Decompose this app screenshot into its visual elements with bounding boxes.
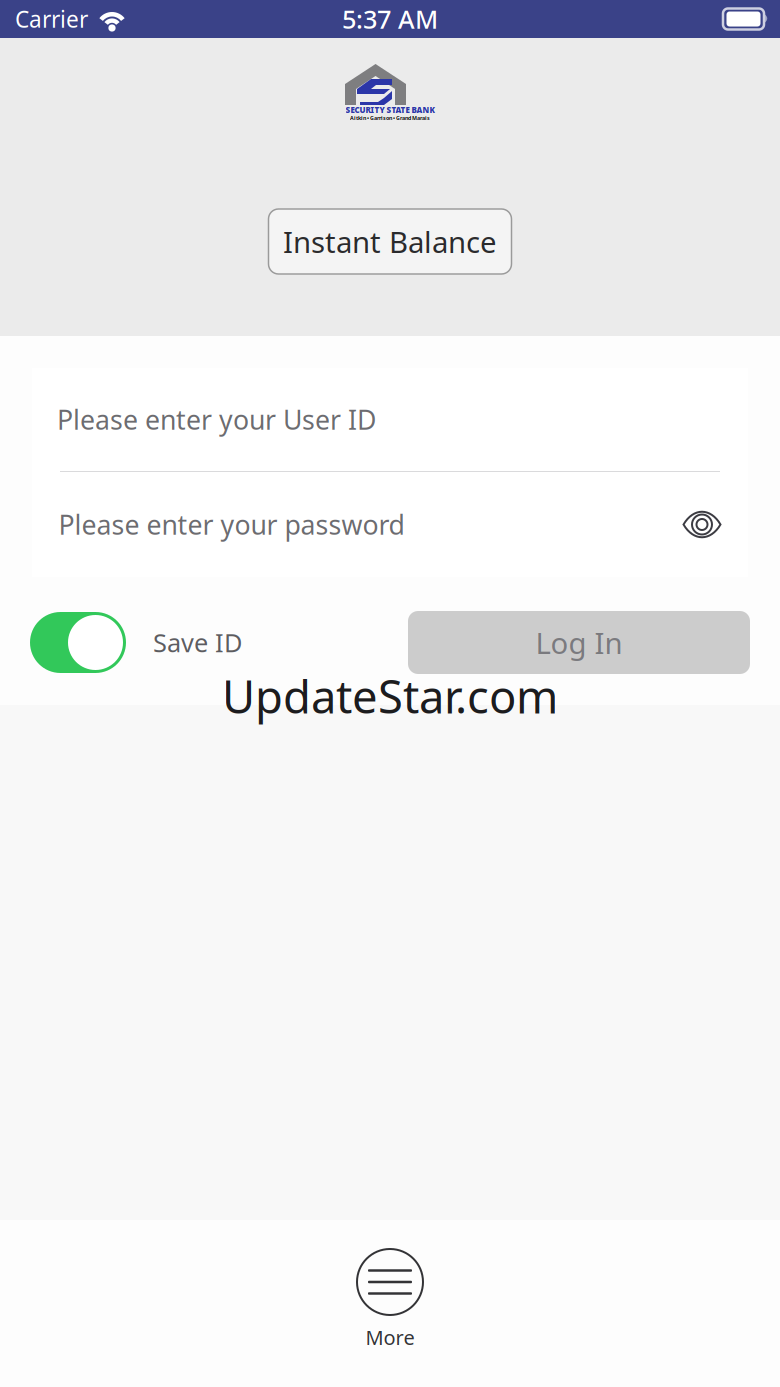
staticText: More [365, 1324, 414, 1351]
staticText: 5:37 AM [342, 2, 438, 36]
staticText: SECURITY STATE BANK [345, 105, 434, 115]
staticText: Please enter your User ID [57, 402, 376, 437]
staticText: Instant Balance [283, 222, 497, 261]
button[interactable]: Save ID [30, 612, 242, 673]
staticText: Log In [535, 623, 622, 662]
button[interactable]: Log In [408, 611, 750, 674]
button[interactable]: More [0, 1220, 780, 1387]
staticText: Aitkin • Garrison • Grand Marais [350, 114, 430, 122]
button[interactable]: Show password [662, 472, 721, 577]
staticText: Please enter your password [58, 507, 404, 542]
staticText: Carrier [15, 4, 88, 34]
button[interactable]: Please enter your password [58, 472, 662, 577]
staticText: UpdateStar.com [222, 666, 558, 726]
button[interactable]: Instant Balance [268, 209, 511, 274]
button[interactable]: Please enter your User ID [57, 368, 723, 471]
staticText: Save ID [153, 626, 242, 659]
